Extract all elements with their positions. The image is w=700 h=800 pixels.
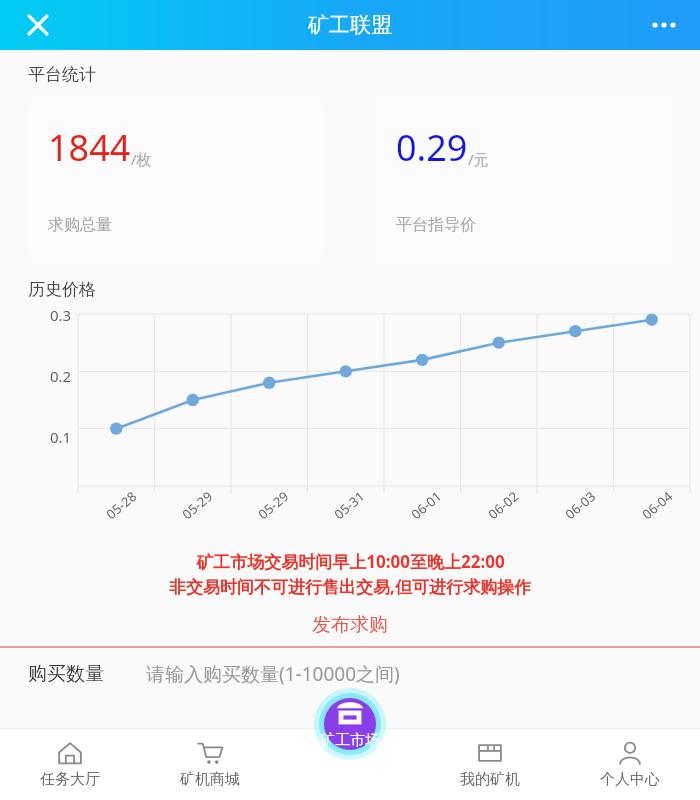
staticText: 06-03 xyxy=(561,487,599,523)
staticText: 平台统计 xyxy=(28,64,96,85)
staticText: 平台指导价 xyxy=(396,215,476,235)
button[interactable]: 任务大厅 xyxy=(0,728,140,800)
staticText: 矿工市场 xyxy=(320,731,380,750)
staticText: /元 xyxy=(468,149,489,169)
staticText: 矿机商城 xyxy=(180,770,240,789)
staticText: 0.3 xyxy=(50,305,72,325)
staticText: 矿工市场交易时间早上10:00至晚上22:00 xyxy=(196,550,505,573)
staticText: 任务大厅 xyxy=(40,770,100,789)
staticText: 0.1 xyxy=(50,427,72,447)
button[interactable]: 矿机商城 xyxy=(140,728,280,800)
staticText: 请输入购买数量(1-10000之间) xyxy=(146,661,400,687)
staticText: 05-28 xyxy=(102,487,140,523)
button[interactable]: 个人中心 xyxy=(560,728,700,800)
staticText: 0.2 xyxy=(50,366,72,386)
staticText: /枚 xyxy=(131,149,152,169)
button[interactable]: 0.29 xyxy=(376,97,672,265)
staticText: 我的矿机 xyxy=(460,770,520,789)
staticText: 06-01 xyxy=(407,487,445,523)
button[interactable]: 1844 xyxy=(28,97,324,265)
staticText: 1844 xyxy=(48,123,131,172)
staticText: 求购总量 xyxy=(48,215,112,235)
staticText: 06-04 xyxy=(638,487,676,523)
staticText: 05-29 xyxy=(178,487,216,523)
button[interactable]: 我的矿机 xyxy=(420,728,560,800)
staticText: 发布求购 xyxy=(312,613,388,637)
staticText: 05-31 xyxy=(330,487,368,523)
button[interactable]: 矿工市场 xyxy=(295,688,405,760)
staticText: 历史价格 xyxy=(28,279,96,300)
button[interactable]: 发布求购 xyxy=(0,608,700,648)
staticText: 0.29 xyxy=(396,123,468,172)
button[interactable]: More options xyxy=(644,5,684,45)
button[interactable]: Close xyxy=(18,5,58,45)
staticText: 06-02 xyxy=(484,487,522,523)
staticText: 购买数量 xyxy=(28,662,104,686)
staticText: 个人中心 xyxy=(600,770,660,789)
staticText: 矿工联盟 xyxy=(308,12,392,38)
staticText: 05-29 xyxy=(254,487,292,523)
staticText: 非交易时间不可进行售出交易,但可进行求购操作 xyxy=(169,575,531,598)
